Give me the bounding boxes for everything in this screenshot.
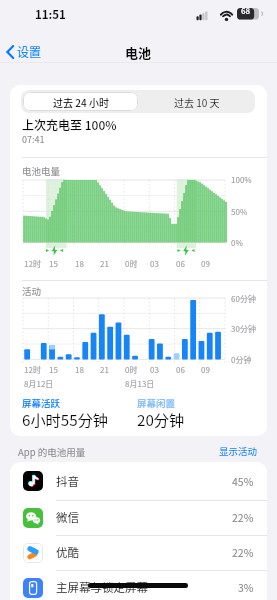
staticText: 100%	[231, 174, 252, 186]
staticText: 07:41	[22, 133, 45, 146]
staticText: 主屏幕与锁定屏幕	[56, 579, 148, 596]
staticText: 09	[201, 364, 210, 376]
staticText: 60分钟	[231, 293, 256, 305]
staticText: 显示活动	[219, 444, 258, 457]
staticText: 活动	[22, 284, 42, 298]
staticText: 30分钟	[231, 323, 256, 335]
staticText: 6小时55分钟	[22, 408, 109, 430]
staticText: 8月12日	[24, 378, 54, 390]
staticText: 21	[100, 258, 109, 270]
button[interactable]: 过去 24 小时	[23, 92, 138, 111]
staticText: 06	[176, 364, 185, 376]
staticText: 抖音	[56, 473, 79, 490]
staticText: 11:51	[35, 6, 66, 22]
staticText: 0时	[125, 258, 138, 270]
staticText: 06	[176, 258, 185, 270]
staticText: 45%	[232, 474, 254, 489]
staticText: 68	[241, 5, 251, 16]
staticText: 0分钟	[231, 354, 252, 366]
staticText: 电池	[125, 43, 152, 61]
staticText: 微信	[56, 509, 79, 526]
staticText: 12时	[24, 364, 41, 376]
staticText: 电池电量	[22, 164, 61, 178]
button[interactable]: 主屏幕与锁定屏幕	[10, 570, 267, 600]
staticText: 12时	[24, 258, 41, 270]
staticText: 20分钟	[137, 408, 185, 430]
staticText: 过去 24 小时	[53, 95, 109, 109]
staticText: App 的电池用量	[18, 445, 86, 459]
staticText: 18	[75, 258, 84, 270]
button[interactable]: 优酷	[10, 535, 267, 570]
staticText: 8月13日	[125, 378, 155, 390]
staticText: 0%	[231, 237, 243, 249]
button[interactable]: 抖音	[10, 462, 267, 500]
staticText: 15	[49, 258, 58, 270]
staticText: 屏幕活跃	[22, 396, 61, 410]
button[interactable]: 设置	[4, 42, 56, 62]
staticText: 设置	[17, 43, 42, 60]
button[interactable]: 显示活动	[158, 444, 258, 457]
staticText: 18	[75, 364, 84, 376]
staticText: 22%	[232, 510, 254, 525]
staticText: 21	[100, 364, 109, 376]
staticText: 过去 10 天	[174, 95, 220, 109]
staticText: 15	[49, 364, 58, 376]
staticText: 屏幕闲置	[137, 396, 176, 410]
staticText: 09	[201, 258, 210, 270]
staticText: 上次充电至 100%	[22, 116, 117, 133]
button[interactable]: 过去 10 天	[138, 90, 255, 113]
staticText: 03	[150, 258, 159, 270]
staticText: 3%	[238, 580, 254, 595]
staticText: 50%	[231, 206, 248, 218]
staticText: 0时	[125, 364, 138, 376]
button[interactable]: 微信	[10, 500, 267, 535]
staticText: 22%	[232, 545, 254, 560]
staticText: 03	[150, 364, 159, 376]
staticText: 优酷	[56, 544, 79, 561]
